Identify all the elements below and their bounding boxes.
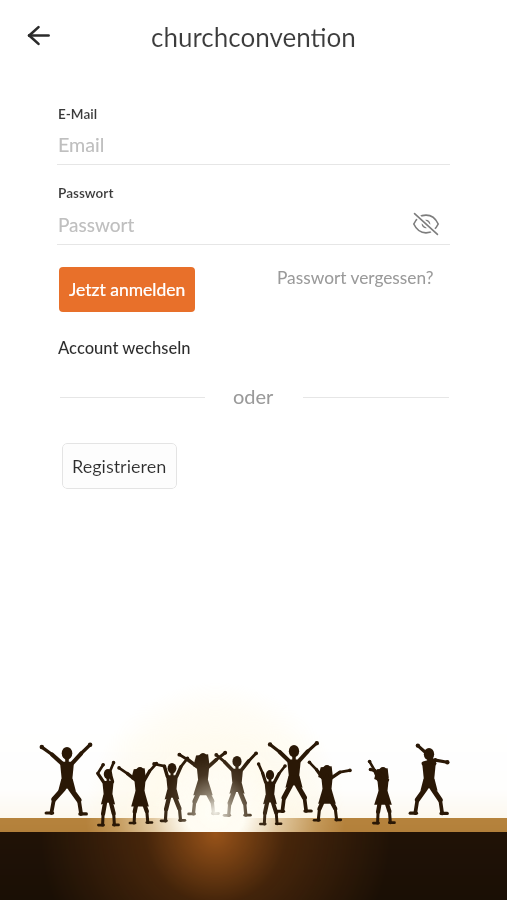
staticText: churchconvention bbox=[151, 21, 356, 52]
button[interactable]: Jetzt anmelden bbox=[59, 267, 195, 312]
staticText: Jetzt anmelden bbox=[69, 279, 186, 300]
staticText: oder bbox=[233, 384, 274, 408]
staticText: E-Mail bbox=[58, 106, 98, 122]
staticText: Passwort bbox=[58, 185, 114, 201]
button[interactable]: Back bbox=[14, 11, 62, 59]
button[interactable]: Passwort vergessen? bbox=[277, 267, 434, 288]
staticText: Account wechseln bbox=[58, 338, 191, 358]
staticText: Email bbox=[58, 133, 105, 157]
button[interactable]: Account wechseln bbox=[58, 338, 191, 358]
staticText: Passwort bbox=[58, 213, 135, 236]
button[interactable]: Show password bbox=[407, 208, 445, 240]
staticText: Passwort vergessen? bbox=[277, 267, 434, 288]
staticText: Registrieren bbox=[72, 455, 167, 477]
button[interactable]: Registrieren bbox=[62, 443, 177, 489]
